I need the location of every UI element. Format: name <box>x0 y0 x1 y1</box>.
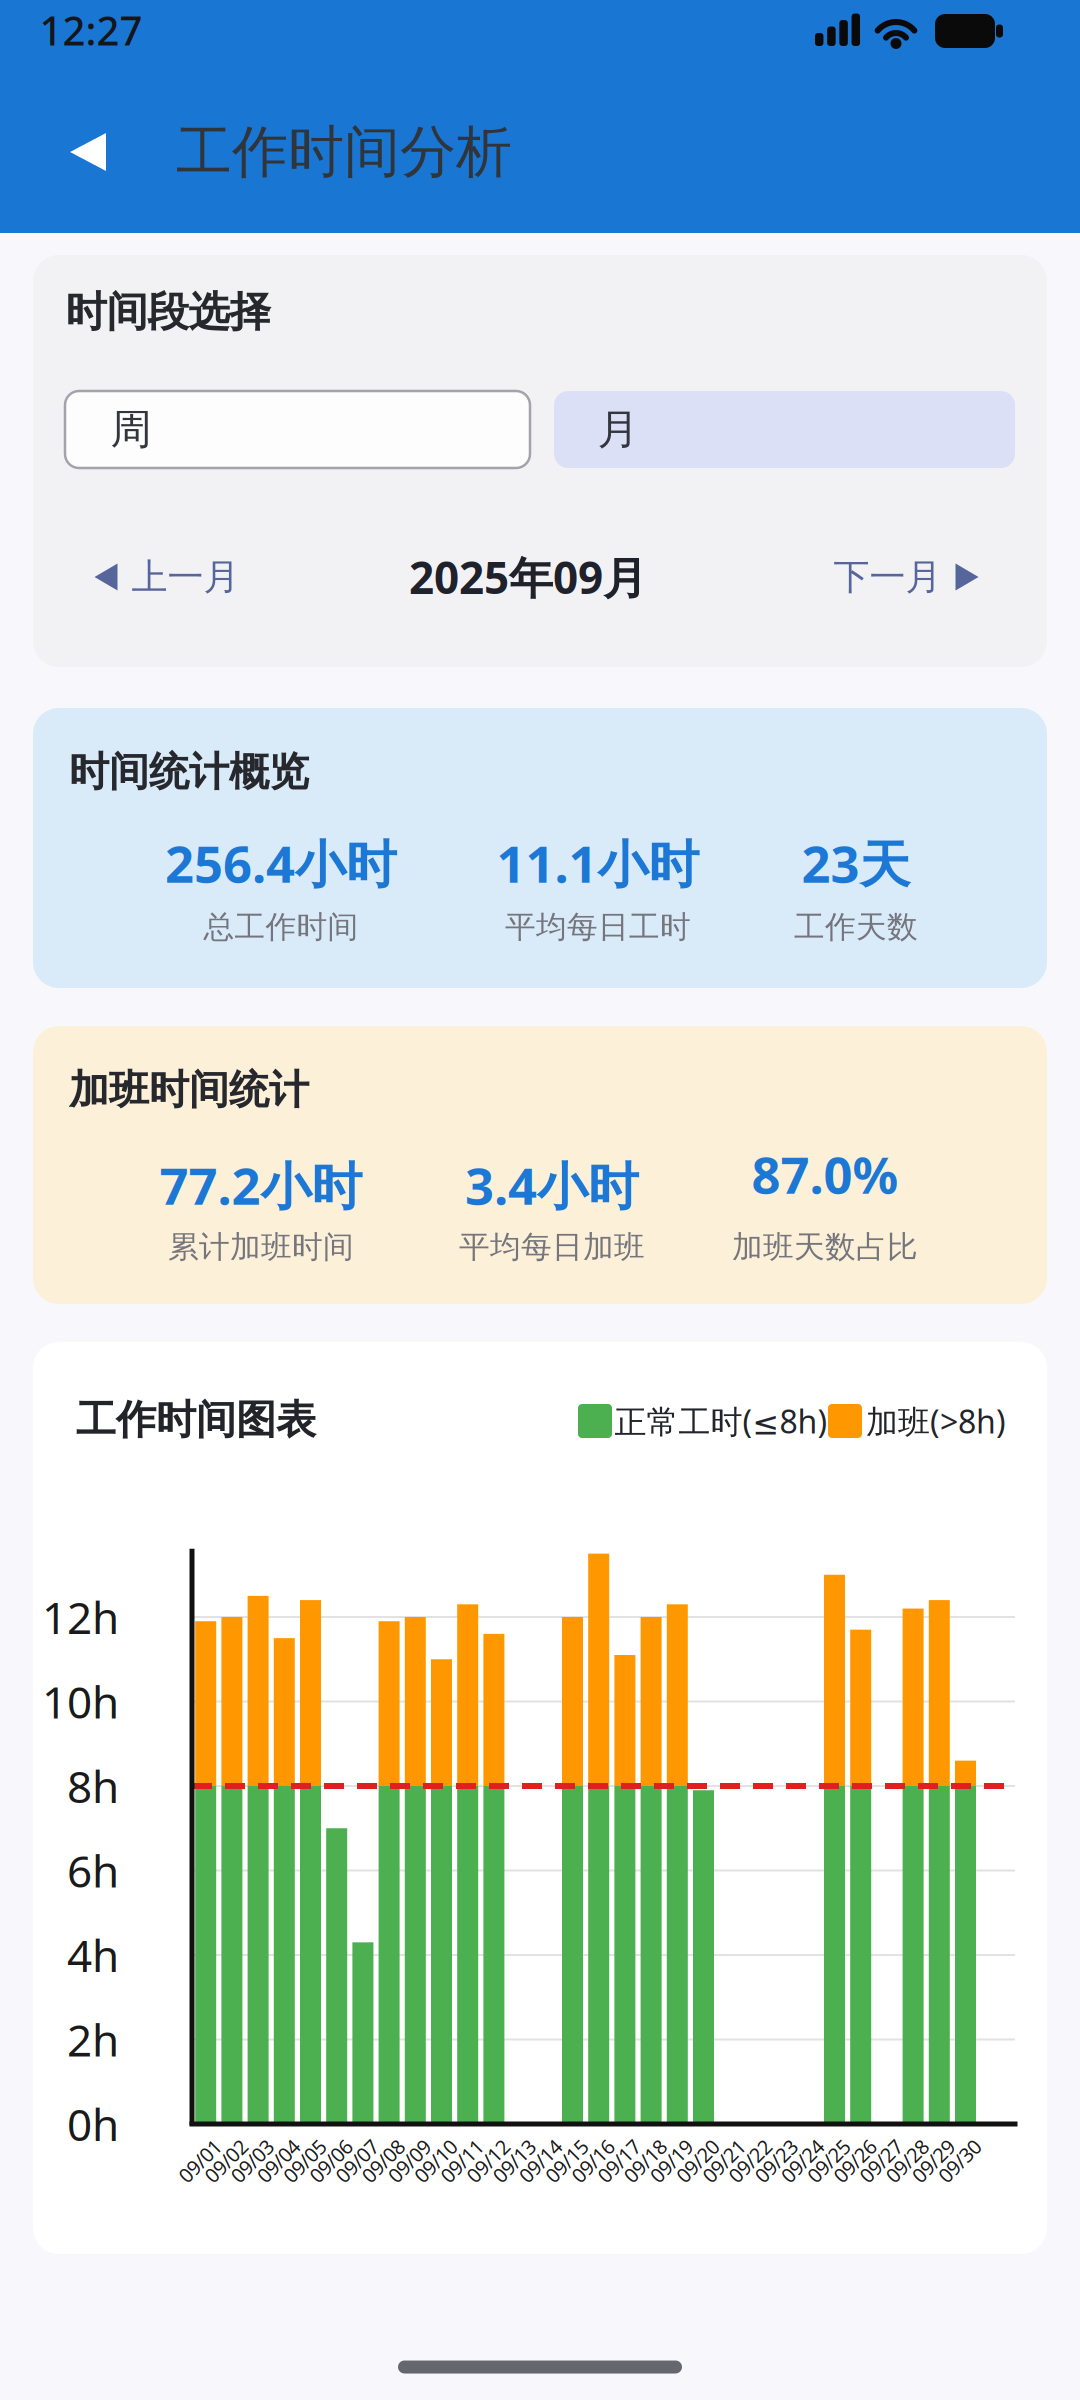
staticText: 周 <box>110 404 151 455</box>
staticText: 加班时间统计 <box>69 1065 309 1114</box>
staticText: 平均每日加班 <box>459 1228 645 1266</box>
staticText: 正常工时(≤8h) <box>614 1400 827 1442</box>
staticText: 12h <box>42 1588 119 1646</box>
staticText: 09/05 <box>279 2148 330 2174</box>
staticText: 10h <box>42 1672 119 1731</box>
staticText: 上一月 <box>131 555 239 599</box>
staticText: 09/07 <box>331 2148 382 2174</box>
staticText: 11.1小时 <box>496 829 699 897</box>
staticText: 12:27 <box>39 3 142 56</box>
staticText: 09/24 <box>777 2148 828 2174</box>
staticText: 09/20 <box>672 2148 723 2174</box>
staticText: 09/06 <box>305 2148 356 2174</box>
button[interactable]: 下一月 <box>833 555 978 599</box>
staticText: 时间统计概览 <box>69 747 309 796</box>
staticText: 平均每日工时 <box>505 908 691 946</box>
staticText: 时间段选择 <box>65 287 270 337</box>
button[interactable]: 月 <box>554 391 1015 468</box>
staticText: 加班(>8h) <box>866 1400 1006 1442</box>
staticText: 09/08 <box>358 2148 409 2174</box>
staticText: 09/19 <box>646 2148 697 2174</box>
staticText: 77.2小时 <box>159 1151 362 1219</box>
button[interactable]: 上一月 <box>94 555 239 599</box>
staticText: 23天 <box>801 829 910 897</box>
staticText: 09/04 <box>253 2148 304 2174</box>
staticText: 月 <box>597 404 638 455</box>
staticText: 09/29 <box>908 2148 959 2174</box>
staticText: 09/15 <box>541 2148 592 2174</box>
staticText: 09/12 <box>462 2148 513 2174</box>
staticText: 09/16 <box>567 2148 618 2174</box>
staticText: 09/30 <box>934 2148 985 2174</box>
staticText: 下一月 <box>833 555 941 599</box>
staticText: 加班天数占比 <box>732 1228 918 1266</box>
staticText: 09/14 <box>515 2148 566 2174</box>
staticText: 0h <box>67 2095 119 2153</box>
staticText: 总工作时间 <box>203 908 358 946</box>
staticText: 工作时间分析 <box>176 118 512 186</box>
staticText: 09/18 <box>620 2148 671 2174</box>
staticText: 87.0% <box>751 1140 898 1208</box>
staticText: 工作天数 <box>794 908 918 946</box>
button[interactable] <box>70 133 106 171</box>
staticText: 09/28 <box>882 2148 933 2174</box>
staticText: 09/09 <box>384 2148 435 2174</box>
staticText: 6h <box>67 1841 119 1900</box>
staticText: 2h <box>67 2010 119 2069</box>
staticText: 09/21 <box>698 2148 749 2174</box>
staticText: 09/01 <box>174 2148 225 2174</box>
staticText: 09/26 <box>829 2148 880 2174</box>
staticText: 09/22 <box>724 2148 775 2174</box>
staticText: 8h <box>67 1757 119 1815</box>
staticText: 09/10 <box>410 2148 461 2174</box>
staticText: 09/02 <box>200 2148 251 2174</box>
staticText: 09/23 <box>751 2148 802 2174</box>
staticText: 09/13 <box>489 2148 540 2174</box>
staticText: 09/11 <box>436 2148 487 2174</box>
staticText: 256.4小时 <box>165 829 397 897</box>
staticText: 3.4小时 <box>465 1151 639 1219</box>
staticText: 09/27 <box>855 2148 906 2174</box>
staticText: 工作时间图表 <box>76 1395 316 1444</box>
staticText: 2025年09月 <box>409 548 647 606</box>
button[interactable]: 周 <box>65 391 530 468</box>
staticText: 09/17 <box>593 2148 644 2174</box>
staticText: 09/03 <box>227 2148 278 2174</box>
staticText: 4h <box>67 1926 119 1984</box>
staticText: 09/25 <box>803 2148 854 2174</box>
staticText: 累计加班时间 <box>168 1228 354 1266</box>
